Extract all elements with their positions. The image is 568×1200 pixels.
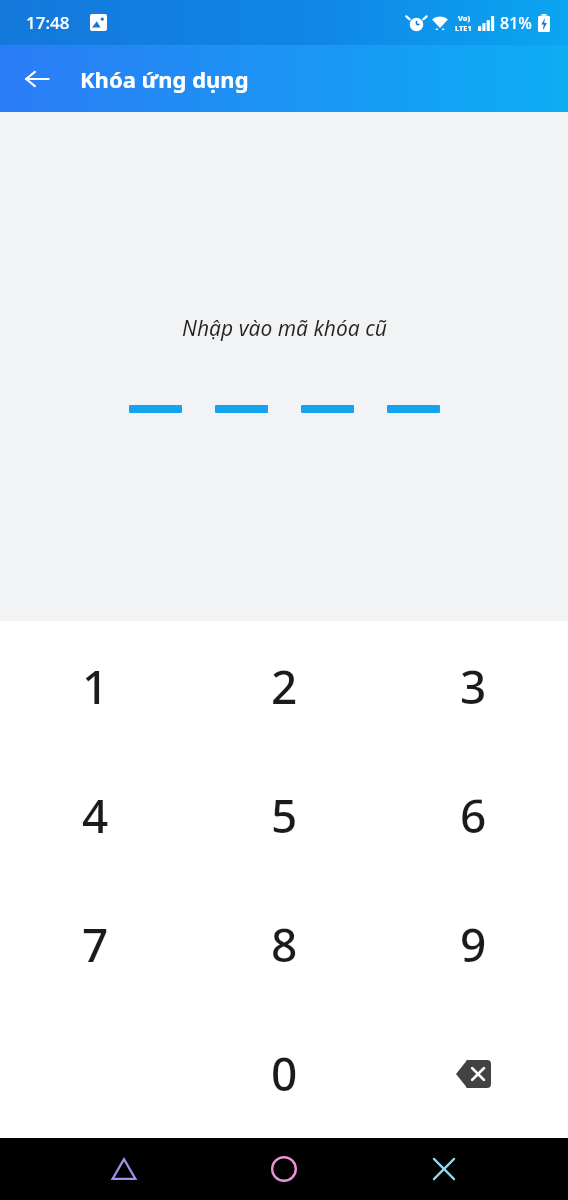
button[interactable]: 8 xyxy=(190,880,379,1009)
staticText: Vo) xyxy=(458,13,470,23)
button[interactable]: 1 xyxy=(0,621,190,751)
staticText: 0 xyxy=(271,1042,298,1105)
button[interactable]: 0 xyxy=(190,1009,379,1138)
staticText: 7 xyxy=(82,913,109,976)
button[interactable]: Back xyxy=(12,54,62,104)
button[interactable]: 2 xyxy=(190,621,379,751)
button[interactable]: Delete xyxy=(379,1009,568,1138)
staticText: Nhập vào mã khóa cũ xyxy=(182,314,387,343)
button[interactable]: 7 xyxy=(0,880,190,1009)
staticText: 5 xyxy=(271,784,298,847)
button[interactable]: 9 xyxy=(379,880,568,1009)
staticText: 1 xyxy=(82,655,109,718)
button[interactable]: 4 xyxy=(0,751,190,880)
staticText: 6 xyxy=(460,784,487,847)
button[interactable]: 6 xyxy=(379,751,568,880)
staticText: LTE1 xyxy=(455,23,472,33)
button[interactable]: 3 xyxy=(379,621,568,751)
button[interactable]: 5 xyxy=(190,751,379,880)
staticText: 17:48 xyxy=(26,11,70,34)
staticText: 81% xyxy=(500,12,532,34)
staticText: 2 xyxy=(271,655,298,718)
button[interactable]: Back xyxy=(94,1139,154,1199)
button[interactable]: Home xyxy=(254,1139,314,1199)
staticText: 3 xyxy=(460,655,487,718)
staticText: 4 xyxy=(82,784,109,847)
staticText: 8 xyxy=(271,913,298,976)
staticText: 9 xyxy=(460,913,487,976)
staticText: Khóa ứng dụng xyxy=(80,64,249,94)
button[interactable]: Recents xyxy=(414,1139,474,1199)
